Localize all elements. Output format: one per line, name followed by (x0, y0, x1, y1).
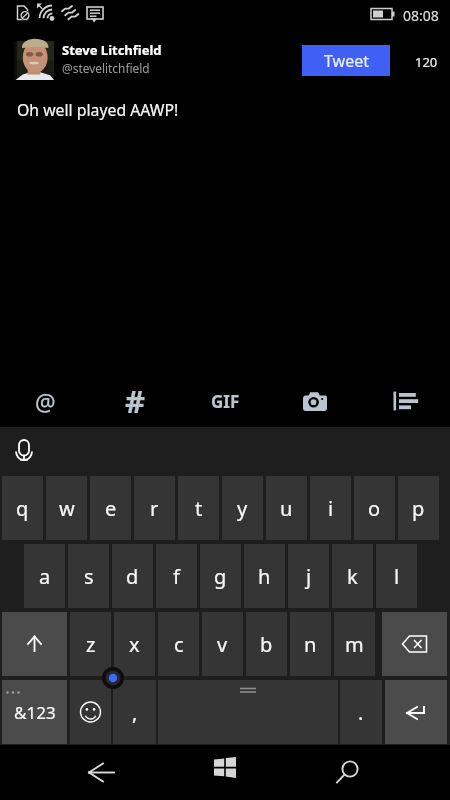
button[interactable]: Tweet (302, 45, 390, 76)
button[interactable]: n (290, 612, 331, 676)
staticText: w (59, 495, 75, 522)
button[interactable]: r (134, 476, 175, 540)
staticText: Tweet (324, 50, 369, 72)
button[interactable]: Shift (2, 612, 67, 676)
staticText: GIF (211, 390, 240, 413)
staticText: n (304, 631, 317, 658)
button[interactable]: b (246, 612, 287, 676)
staticText: q (16, 495, 29, 522)
button[interactable]: i (310, 476, 351, 540)
staticText: @ (35, 386, 56, 417)
staticText: c (174, 631, 184, 658)
button[interactable]: j (288, 544, 329, 608)
staticText: o (368, 495, 381, 522)
button[interactable]: e (90, 476, 131, 540)
button[interactable]: , (113, 680, 156, 744)
staticText: 120 (415, 53, 438, 71)
button[interactable]: a (24, 544, 65, 608)
staticText: k (347, 563, 358, 590)
staticText: Oh well played AAWP! (17, 99, 179, 121)
staticText: , (132, 699, 138, 726)
button[interactable]: o (354, 476, 395, 540)
button[interactable]: GIF (180, 378, 270, 424)
button[interactable]: Space (158, 680, 338, 744)
button[interactable]: y (222, 476, 263, 540)
button[interactable]: u (266, 476, 307, 540)
button[interactable]: Format (360, 378, 450, 424)
button[interactable]: Mention (0, 378, 90, 424)
staticText: a (39, 563, 51, 590)
button[interactable]: Camera (270, 378, 360, 424)
button[interactable]: w (46, 476, 87, 540)
staticText: p (412, 495, 425, 522)
button[interactable]: Search (325, 750, 375, 795)
button[interactable]: t (178, 476, 219, 540)
button[interactable]: Hashtag (90, 378, 180, 424)
staticText: # (125, 380, 146, 422)
button[interactable]: c (158, 612, 199, 676)
button[interactable]: f (156, 544, 197, 608)
staticText: b (260, 631, 273, 658)
staticText: i (328, 495, 334, 522)
button[interactable]: x (114, 612, 155, 676)
staticText: h (258, 563, 271, 590)
staticText: z (86, 631, 96, 658)
staticText: m (345, 631, 364, 658)
staticText: f (173, 563, 180, 590)
staticText: 08:08 (403, 6, 439, 25)
button[interactable]: d (112, 544, 153, 608)
button[interactable]: l (376, 544, 417, 608)
staticText: . (358, 699, 364, 726)
button[interactable]: Emoji (70, 680, 111, 744)
staticText: Steve Litchfield (62, 41, 162, 59)
button[interactable]: Backspace (382, 612, 447, 676)
staticText: s (84, 563, 94, 590)
staticText: x (129, 631, 140, 658)
button[interactable]: Symbols (2, 680, 67, 744)
staticText: r (150, 495, 159, 522)
staticText: u (280, 495, 293, 522)
staticText: d (126, 563, 139, 590)
button[interactable]: p (398, 476, 439, 540)
staticText: j (306, 563, 312, 590)
staticText: @stevelitchfield (62, 60, 150, 76)
staticText: g (214, 563, 227, 590)
button[interactable]: k (332, 544, 373, 608)
button[interactable]: q (2, 476, 43, 540)
staticText: t (195, 495, 203, 522)
button[interactable]: s (68, 544, 109, 608)
button[interactable]: m (334, 612, 375, 676)
button[interactable]: Enter (385, 680, 447, 744)
button[interactable]: g (200, 544, 241, 608)
button[interactable]: h (244, 544, 285, 608)
staticText: l (394, 563, 400, 590)
staticText: e (105, 495, 117, 522)
staticText: y (237, 495, 248, 522)
staticText: &123 (14, 701, 56, 724)
staticText: v (217, 631, 228, 658)
button[interactable]: Home (200, 750, 250, 795)
button[interactable]: . (340, 680, 382, 744)
button[interactable]: Voice input (8, 432, 40, 464)
button[interactable]: Back (75, 750, 127, 795)
button[interactable]: z (70, 612, 111, 676)
button[interactable]: v (202, 612, 243, 676)
